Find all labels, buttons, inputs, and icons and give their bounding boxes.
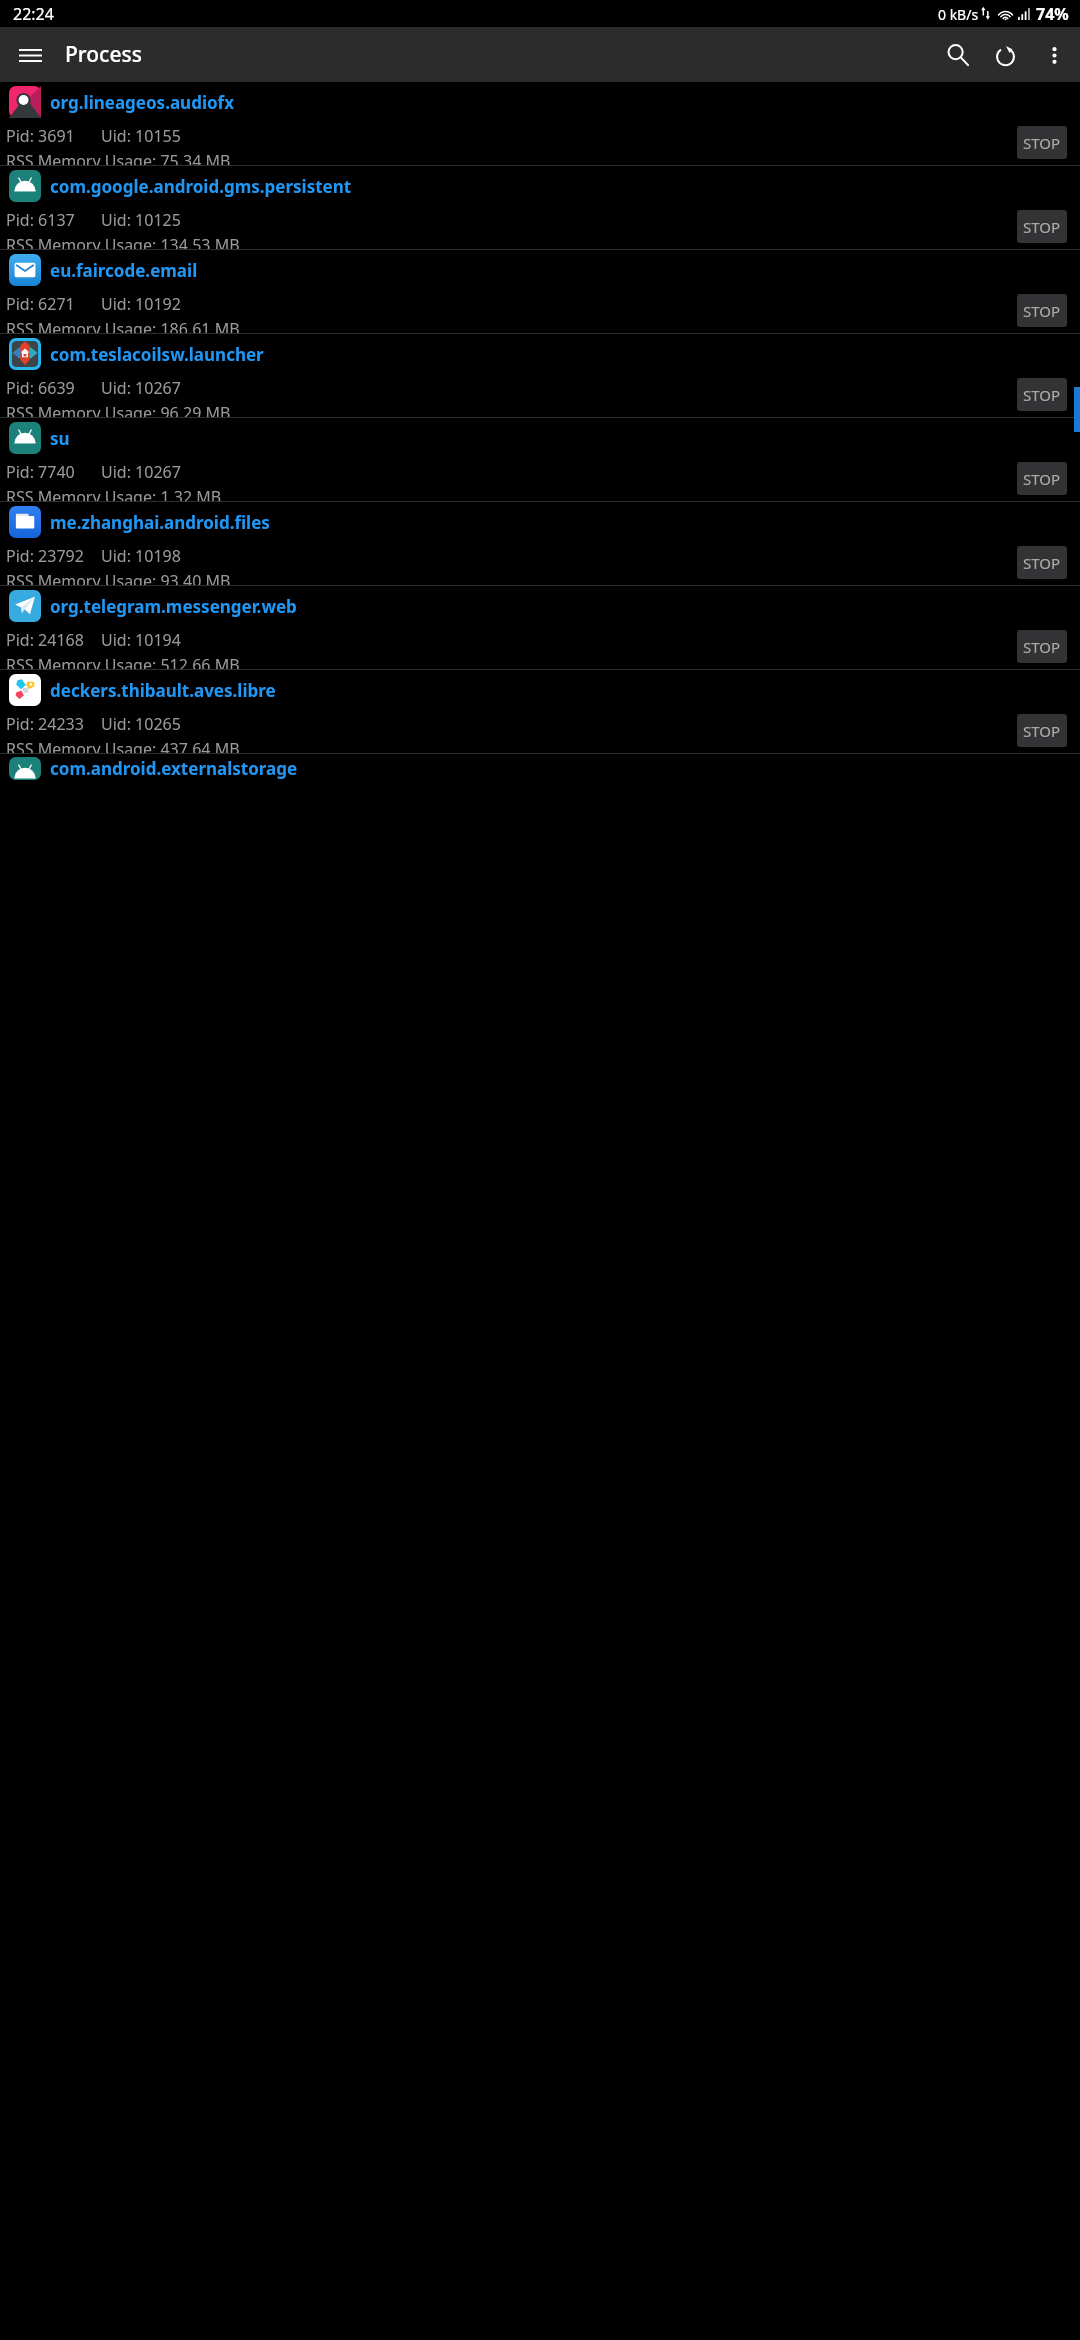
button[interactable]: org.telegram.messenger.web [0, 586, 1080, 669]
staticText: org.lineageos.audiofx [50, 91, 235, 114]
button[interactable]: More options [1030, 31, 1078, 79]
button[interactable]: STOP [1017, 294, 1067, 327]
staticText: Uid: 10267 [101, 377, 181, 399]
staticText: com.teslacoilsw.launcher [50, 343, 264, 366]
staticText: Pid: 6137 [6, 209, 75, 231]
button[interactable]: STOP [1017, 630, 1067, 663]
staticText: STOP [1023, 301, 1061, 321]
button[interactable]: com.google.android.gms.persistent [0, 166, 1080, 249]
staticText: RSS Memory Usage: 93.40 MB [6, 570, 231, 585]
button[interactable]: Open navigation menu [6, 31, 54, 79]
staticText: su [50, 427, 70, 450]
button[interactable]: STOP [1017, 546, 1067, 579]
staticText: Pid: 23792 [6, 545, 84, 567]
button[interactable]: com.teslacoilsw.launcher [0, 334, 1080, 417]
staticText: Pid: 6639 [6, 377, 75, 399]
button[interactable]: org.lineageos.audiofx [0, 82, 1080, 165]
staticText: deckers.thibault.aves.libre [50, 679, 276, 702]
staticText: Uid: 10192 [101, 293, 181, 315]
staticText: RSS Memory Usage: 134.53 MB [6, 234, 240, 249]
staticText: Pid: 3691 [6, 125, 75, 147]
staticText: eu.faircode.email [50, 259, 198, 282]
staticText: com.google.android.gms.persistent [50, 175, 352, 198]
staticText: 74% [1036, 3, 1069, 25]
staticText: Uid: 10125 [101, 209, 181, 231]
staticText: STOP [1023, 385, 1061, 405]
staticText: me.zhanghai.android.files [50, 511, 270, 534]
staticText: Uid: 10194 [101, 629, 181, 651]
button[interactable]: Refresh [982, 31, 1030, 79]
staticText: Pid: 24233 [6, 713, 84, 735]
button[interactable]: eu.faircode.email [0, 250, 1080, 333]
staticText: Pid: 24168 [6, 629, 84, 651]
staticText: Uid: 10198 [101, 545, 181, 567]
staticText: Uid: 10155 [101, 125, 181, 147]
staticText: STOP [1023, 637, 1061, 657]
staticText: STOP [1023, 217, 1061, 237]
staticText: com.android.externalstorage [50, 757, 298, 780]
button[interactable]: STOP [1017, 378, 1067, 411]
staticText: RSS Memory Usage: 1.32 MB [6, 486, 222, 501]
staticText: STOP [1023, 721, 1061, 741]
button[interactable]: su [0, 418, 1080, 501]
button[interactable]: deckers.thibault.aves.libre [0, 670, 1080, 753]
button[interactable]: me.zhanghai.android.files [0, 502, 1080, 585]
button[interactable]: STOP [1017, 462, 1067, 495]
staticText: Pid: 6271 [6, 293, 75, 315]
staticText: Uid: 10265 [101, 713, 181, 735]
button[interactable]: STOP [1017, 126, 1067, 159]
button[interactable]: STOP [1017, 210, 1067, 243]
staticText: org.telegram.messenger.web [50, 595, 297, 618]
staticText: STOP [1023, 469, 1061, 489]
button[interactable]: com.android.externalstorage [0, 754, 1080, 780]
staticText: STOP [1023, 553, 1061, 573]
staticText: RSS Memory Usage: 437.64 MB [6, 738, 240, 753]
button[interactable]: STOP [1017, 714, 1067, 747]
staticText: RSS Memory Usage: 96.29 MB [6, 402, 231, 417]
staticText: 22:24 [13, 3, 54, 25]
staticText: 0 kB/s [938, 5, 979, 24]
staticText: Uid: 10267 [101, 461, 181, 483]
staticText: Pid: 7740 [6, 461, 75, 483]
staticText: RSS Memory Usage: 512.66 MB [6, 654, 240, 669]
staticText: STOP [1023, 133, 1061, 153]
staticText: RSS Memory Usage: 186.61 MB [6, 318, 240, 333]
button[interactable]: Search [934, 31, 982, 79]
staticText: RSS Memory Usage: 75.34 MB [6, 150, 231, 165]
staticText: Process [65, 40, 142, 69]
